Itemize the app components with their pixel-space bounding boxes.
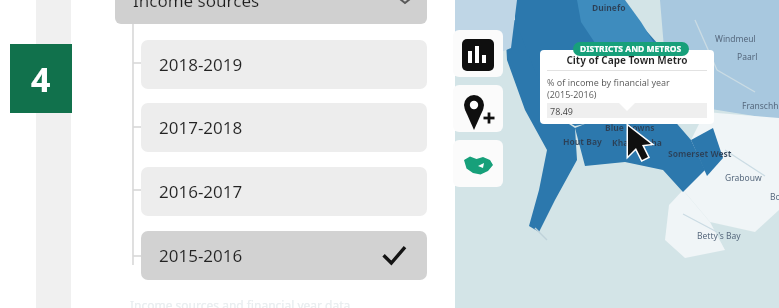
button[interactable]: 2018-2019 [141,40,427,89]
staticText: Blue Downs [605,122,655,134]
button[interactable]: Add location [453,85,503,132]
button[interactable]: 2015-2016 [141,231,427,280]
button[interactable]: 2016-2017 [141,167,427,216]
button[interactable]: Charts [453,30,503,77]
staticText: Khayelitsha [612,137,662,149]
button[interactable]: South Africa [453,140,503,187]
staticText: Betty's Bay [697,230,741,242]
staticText: 2017-2018 [159,116,243,139]
staticText: Income sources and financial year data [130,297,351,308]
staticText: Melkbosstrand [585,42,649,54]
staticText: Somerset West [668,148,732,160]
staticText: % of income by financial year (2015-2016… [547,76,714,100]
button[interactable]: 2017-2018 [141,103,427,152]
staticText: Grabouw [725,172,762,184]
button[interactable]: Income sources [115,0,427,24]
staticText: Franschho [742,100,779,112]
staticText: 78.49 [550,105,574,117]
staticText: DISTRICTS AND METROS [580,43,682,55]
staticText: Bo [770,191,779,203]
staticText: 2015-2016 [159,244,243,267]
staticText: Windmeul [715,33,756,45]
staticText: Paarl [737,51,758,63]
staticText: City of Cape Town Metro [566,53,688,67]
staticText: Hout Bay [563,136,602,148]
staticText: 2018-2019 [159,53,243,76]
staticText: Income sources [133,0,260,12]
button[interactable]: 4 [10,44,72,113]
staticText: 4 [31,56,51,102]
staticText: Duinefo [592,2,626,14]
staticText: 2016-2017 [159,180,243,203]
